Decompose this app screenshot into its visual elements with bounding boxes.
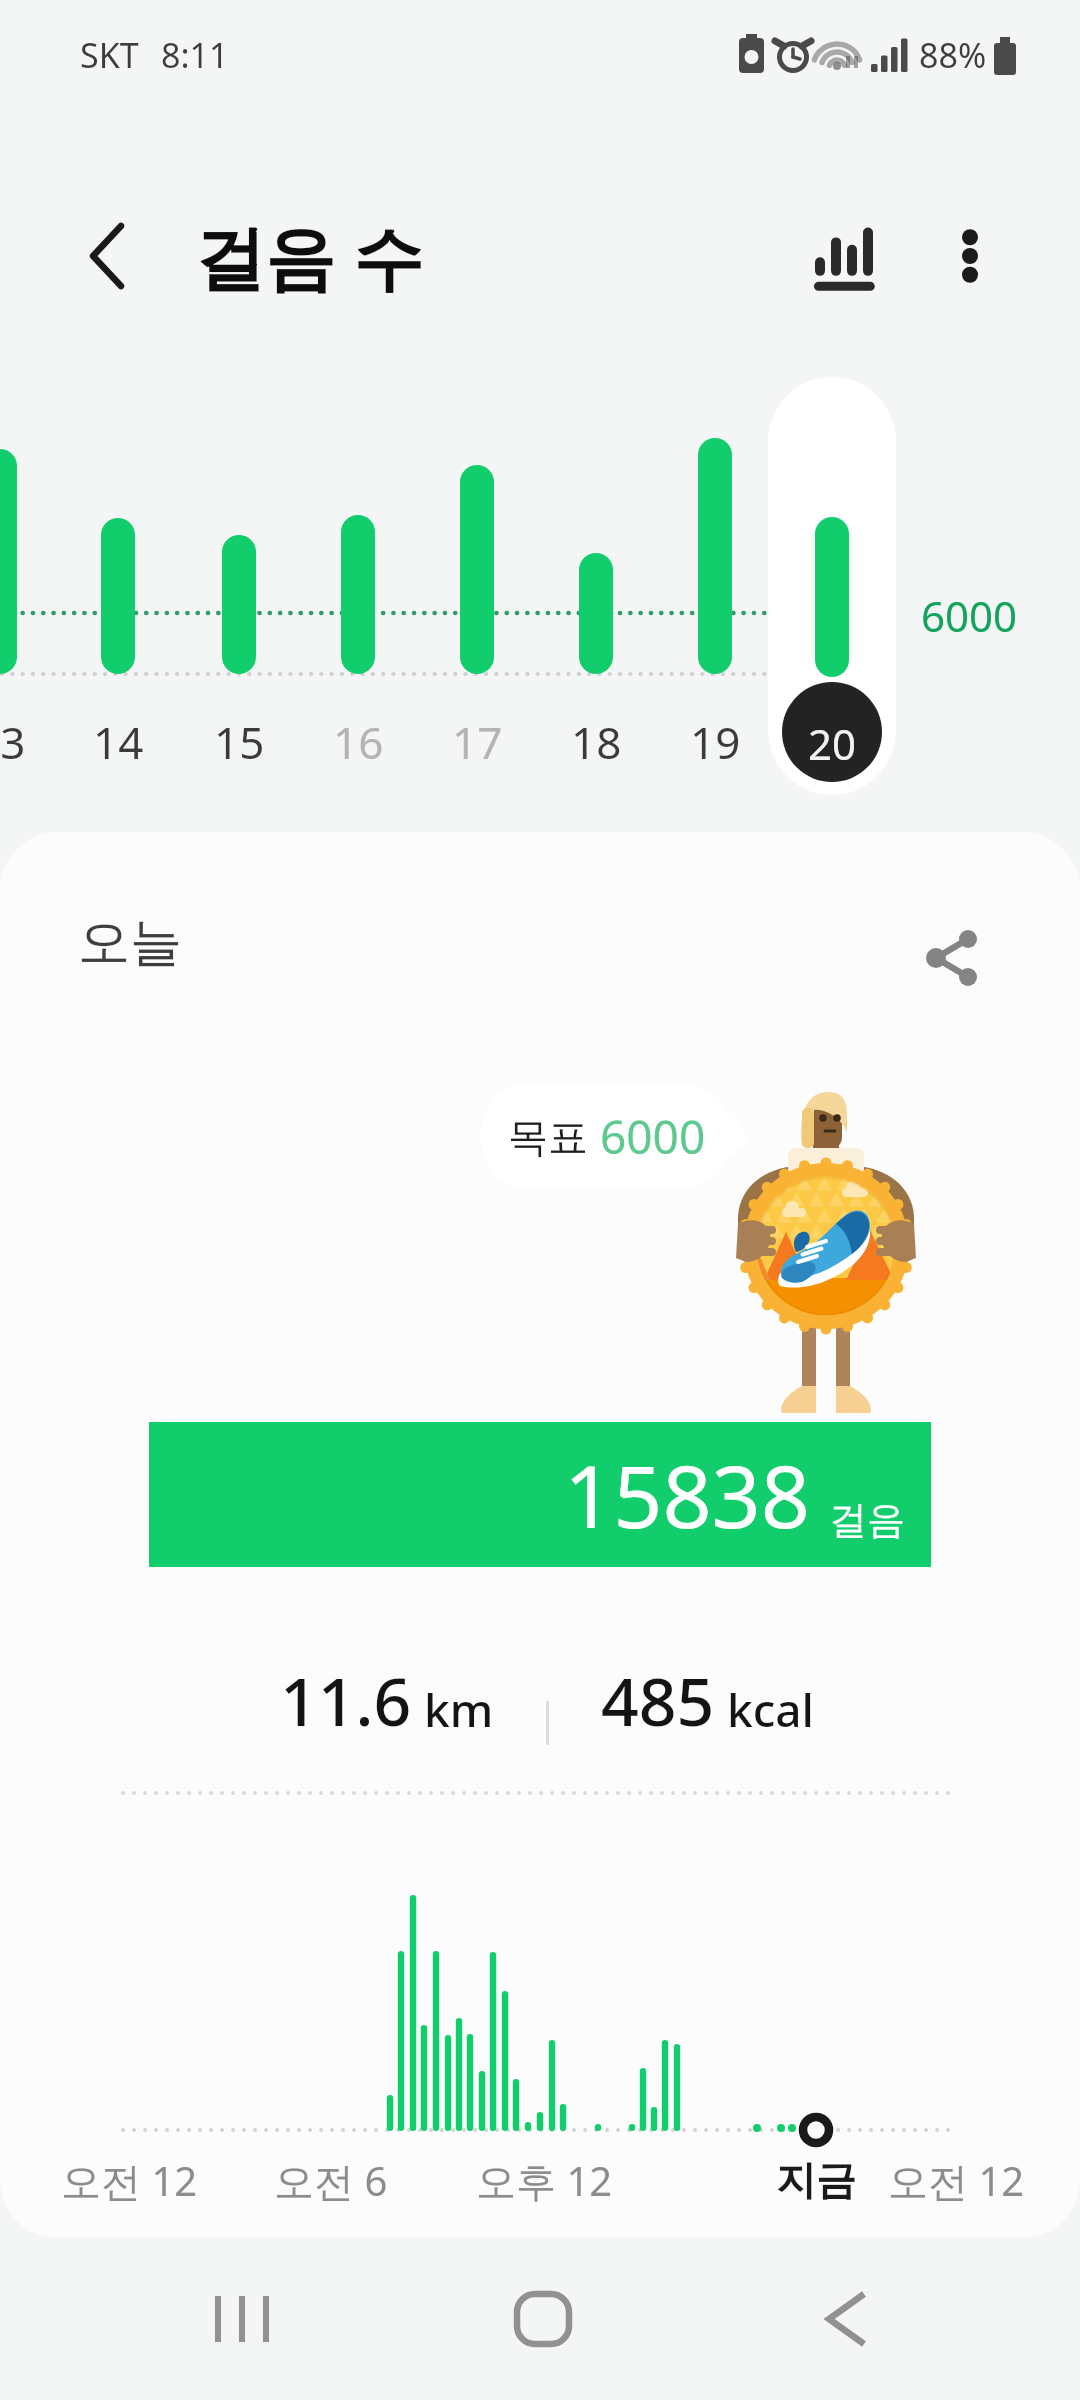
- staticText: SKT: [80, 32, 139, 78]
- staticText: 19: [690, 712, 741, 770]
- button[interactable]: Share: [897, 903, 1007, 1013]
- staticText: 오전 6: [274, 2153, 388, 2208]
- staticText: 8:11: [161, 32, 229, 78]
- button[interactable]: More options: [910, 196, 1030, 316]
- staticText: 6000: [921, 587, 1018, 644]
- staticText: km: [424, 1678, 494, 1741]
- staticText: 6000: [600, 1105, 706, 1168]
- staticText: 목표: [508, 1112, 588, 1162]
- button[interactable]: 20: [768, 377, 896, 795]
- staticText: 17: [452, 712, 503, 770]
- button[interactable]: 14: [58, 377, 178, 795]
- button[interactable]: 13: [0, 377, 60, 795]
- button[interactable]: 15838: [149, 1422, 931, 1567]
- staticText: 20: [808, 715, 857, 772]
- button[interactable]: 15: [179, 377, 299, 795]
- button[interactable]: Home: [483, 2238, 603, 2400]
- button[interactable]: Trends chart: [780, 191, 910, 321]
- staticText: 88%: [919, 32, 987, 78]
- button[interactable]: 17: [417, 377, 537, 795]
- staticText: 485: [601, 1655, 715, 1745]
- staticText: 15: [214, 712, 265, 770]
- staticText: 걸음 수: [195, 208, 424, 304]
- staticText: 11.6: [280, 1655, 412, 1745]
- staticText: 14: [93, 712, 144, 770]
- button[interactable]: Recent apps: [183, 2238, 303, 2400]
- staticText: 오늘: [78, 910, 182, 976]
- staticText: 오전 12: [61, 2153, 198, 2208]
- staticText: 16: [333, 712, 384, 770]
- button[interactable]: 19: [655, 377, 775, 795]
- button[interactable]: Back: [786, 2238, 906, 2400]
- staticText: 걸음: [829, 1496, 905, 1544]
- staticText: 13: [0, 712, 26, 770]
- staticText: kcal: [727, 1678, 815, 1741]
- button[interactable]: Back: [52, 201, 162, 311]
- staticText: 오후 12: [476, 2153, 613, 2208]
- staticText: 18: [571, 712, 622, 770]
- button[interactable]: 18: [536, 377, 656, 795]
- staticText: 오전 12: [888, 2153, 1025, 2208]
- button[interactable]: 16: [298, 377, 418, 795]
- staticText: 지금: [776, 2155, 856, 2205]
- staticText: 15838: [564, 1436, 810, 1553]
